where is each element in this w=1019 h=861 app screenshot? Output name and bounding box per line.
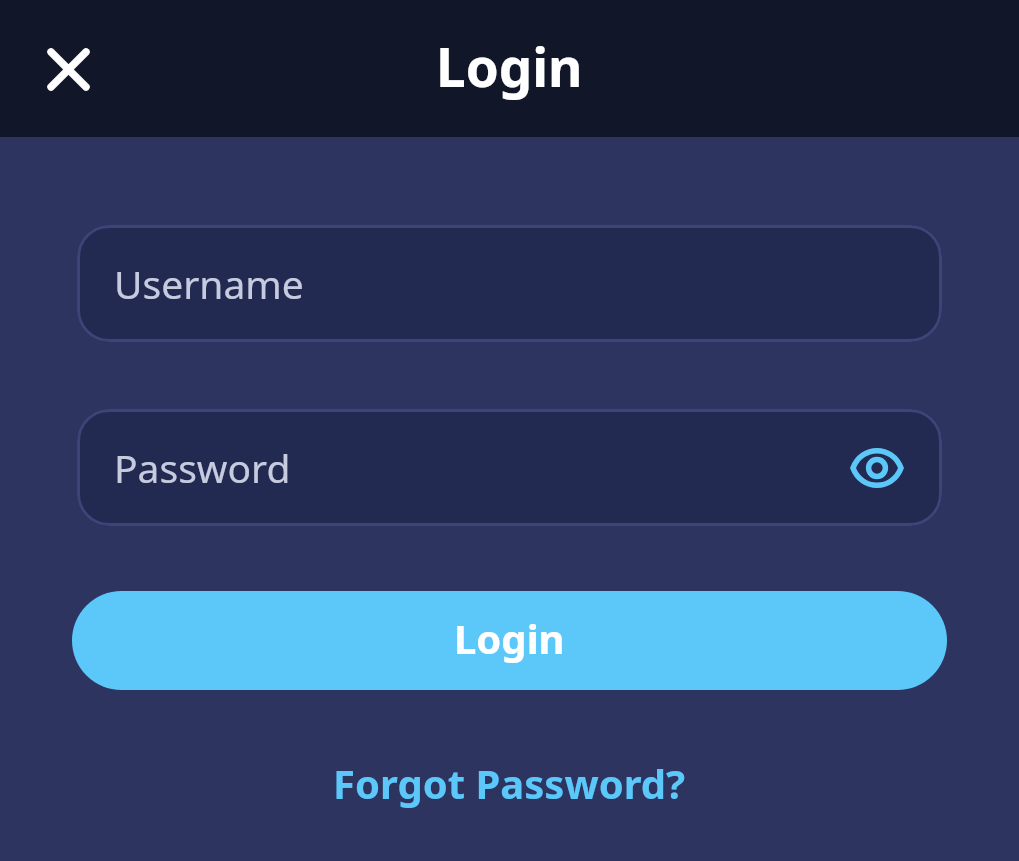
button[interactable]: Password	[77, 409, 942, 526]
staticText: Username	[114, 257, 304, 310]
button[interactable]: Forgot Password?	[325, 748, 694, 818]
button[interactable]: Login	[72, 591, 947, 690]
staticText: Password	[114, 441, 291, 494]
button[interactable]: Username	[77, 225, 942, 342]
staticText: Login	[436, 30, 583, 102]
button[interactable]	[849, 440, 905, 496]
button[interactable]	[40, 41, 96, 97]
staticText: Forgot Password?	[333, 756, 686, 810]
staticText: Login	[454, 611, 565, 665]
